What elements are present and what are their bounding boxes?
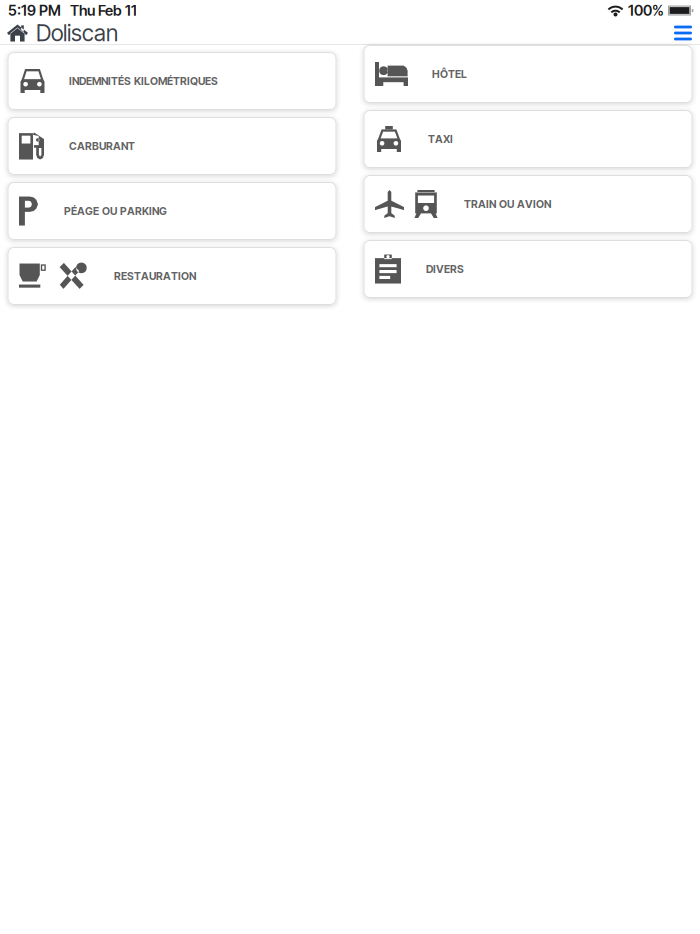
button[interactable]: H Ô T E L: [363, 45, 692, 103]
staticText: D I V E R S: [426, 262, 464, 275]
button[interactable]: Doliscan: [0, 19, 118, 47]
button[interactable]: C A R B U R A N T: [7, 117, 336, 175]
staticText: 100%: [628, 2, 664, 19]
staticText: P É A G E O U P A R K I N G: [64, 204, 167, 217]
button[interactable]: P É A G E O U P A R K I N G: [7, 182, 336, 240]
staticText: Thu Feb 11: [70, 2, 137, 19]
button[interactable]: Menu: [666, 21, 700, 45]
button[interactable]: D I V E R S: [363, 240, 692, 298]
button[interactable]: T A X I: [363, 110, 692, 168]
staticText: C A R B U R A N T: [69, 139, 135, 152]
staticText: 5:19 PM: [8, 2, 61, 19]
staticText: Doliscan: [36, 19, 118, 47]
staticText: T R A I N O U A V I O N: [464, 197, 551, 210]
staticText: T A X I: [428, 132, 453, 145]
staticText: H Ô T E L: [432, 67, 467, 80]
button[interactable]: T R A I N O U A V I O N: [363, 175, 692, 233]
button[interactable]: I N D E M N I T É S K I L O M É T R I Q …: [7, 52, 336, 110]
staticText: I N D E M N I T É S K I L O M É T R I Q …: [69, 74, 218, 87]
staticText: R E S T A U R A T I O N: [114, 269, 196, 282]
button[interactable]: R E S T A U R A T I O N: [7, 247, 336, 305]
